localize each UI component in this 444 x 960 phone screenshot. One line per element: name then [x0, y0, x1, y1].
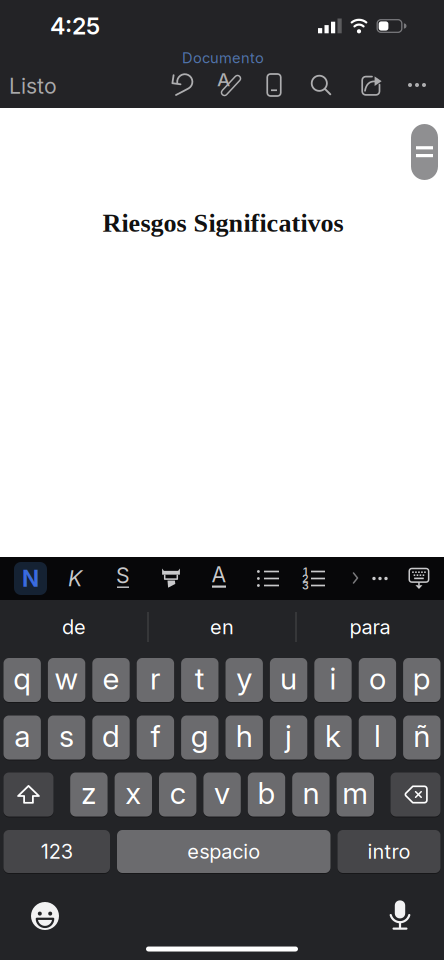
button[interactable]: q — [3, 657, 41, 703]
staticText: a — [14, 718, 30, 754]
button[interactable]: j — [270, 714, 307, 760]
staticText: e — [102, 660, 119, 697]
button[interactable]: Deshacer — [164, 65, 204, 105]
staticText: o — [369, 660, 386, 697]
button[interactable]: Resaltar — [151, 558, 191, 598]
staticText: A — [211, 562, 226, 587]
button[interactable]: h — [225, 714, 263, 760]
staticText: en — [210, 615, 234, 639]
staticText: r — [150, 660, 161, 697]
button[interactable]: a — [3, 714, 41, 760]
staticText: h — [236, 718, 253, 754]
staticText: j — [285, 718, 292, 754]
button[interactable]: t — [181, 657, 218, 703]
button[interactable]: z — [70, 771, 108, 817]
staticText: g — [191, 718, 209, 754]
button[interactable]: espacio — [117, 829, 330, 874]
staticText: 1 — [303, 565, 308, 578]
button[interactable]: b — [248, 771, 285, 817]
staticText: Documento — [182, 49, 264, 67]
staticText: v — [214, 775, 230, 811]
button[interactable]: 123 — [3, 829, 110, 874]
staticText: espacio — [187, 839, 260, 864]
button[interactable]: Subrayado — [105, 558, 141, 598]
button[interactable]: Color de fuente — [201, 558, 237, 598]
button[interactable]: intro — [337, 829, 440, 874]
button[interactable]: Listo — [3, 66, 63, 106]
staticText: A — [217, 68, 230, 91]
staticText: p — [413, 660, 431, 697]
button[interactable]: d — [92, 714, 130, 760]
button[interactable]: r — [137, 657, 174, 703]
staticText: t — [195, 660, 205, 697]
staticText: 3 — [302, 579, 309, 592]
button[interactable]: k — [314, 714, 352, 760]
button[interactable]: x — [115, 771, 152, 817]
button[interactable]: Negrita — [14, 562, 47, 595]
button[interactable]: v — [203, 771, 241, 817]
button[interactable]: s — [48, 714, 85, 760]
button[interactable]: Mayúsculas — [3, 771, 53, 817]
button[interactable]: Compartir — [349, 65, 389, 105]
button[interactable]: Numeración — [294, 558, 334, 598]
button[interactable]: Más opciones — [362, 558, 398, 598]
button[interactable]: Formato — [209, 65, 249, 105]
staticText: c — [170, 775, 186, 811]
button[interactable]: p — [403, 657, 440, 703]
staticText: l — [374, 718, 381, 754]
button[interactable]: i — [314, 657, 352, 703]
button[interactable]: l — [359, 714, 396, 760]
button[interactable]: para — [305, 607, 435, 647]
button[interactable]: c — [159, 771, 196, 817]
button[interactable]: de — [9, 607, 139, 647]
staticText: Listo — [9, 73, 57, 99]
staticText: z — [81, 775, 97, 811]
button[interactable]: m — [337, 771, 374, 817]
button[interactable]: w — [48, 657, 85, 703]
staticText: m — [342, 775, 368, 811]
button[interactable]: u — [270, 657, 307, 703]
staticText: ñ — [413, 718, 430, 754]
staticText: intro — [367, 839, 410, 864]
staticText: y — [236, 660, 252, 697]
staticText: 2 — [302, 572, 309, 585]
button[interactable]: g — [181, 714, 218, 760]
button[interactable]: Vista móvil — [254, 65, 294, 105]
staticText: u — [280, 660, 297, 697]
button[interactable]: Retroceso — [390, 771, 440, 817]
staticText: s — [59, 718, 74, 754]
staticText: para — [349, 615, 390, 639]
button[interactable]: Dictado — [380, 895, 420, 935]
button[interactable]: Emoji — [25, 896, 65, 936]
button[interactable]: f — [137, 714, 174, 760]
staticText: de — [62, 615, 86, 639]
staticText: f — [150, 718, 160, 754]
button[interactable]: en — [157, 607, 287, 647]
staticText: N — [22, 565, 39, 592]
staticText: S — [116, 563, 130, 588]
button[interactable]: Buscar — [301, 65, 341, 105]
staticText: i — [329, 660, 336, 697]
staticText: q — [13, 660, 31, 697]
button[interactable]: y — [225, 657, 263, 703]
staticText: x — [125, 775, 141, 811]
button[interactable]: Ocultar teclado — [399, 558, 439, 598]
staticText: K — [68, 566, 82, 591]
staticText: d — [102, 718, 120, 754]
staticText: 123 — [41, 839, 73, 864]
button[interactable]: e — [92, 657, 130, 703]
button[interactable]: n — [292, 771, 330, 817]
staticText: b — [257, 775, 275, 811]
staticText: k — [325, 718, 341, 754]
button[interactable]: o — [359, 657, 396, 703]
button[interactable]: ñ — [403, 714, 440, 760]
staticText: 4:25 — [50, 12, 100, 40]
button[interactable]: Más — [397, 65, 437, 105]
staticText: n — [302, 775, 319, 811]
button[interactable]: Cursiva — [57, 558, 93, 598]
button[interactable]: Viñetas — [248, 558, 288, 598]
staticText: w — [55, 660, 79, 697]
staticText: Riesgos Significativos — [102, 208, 343, 237]
